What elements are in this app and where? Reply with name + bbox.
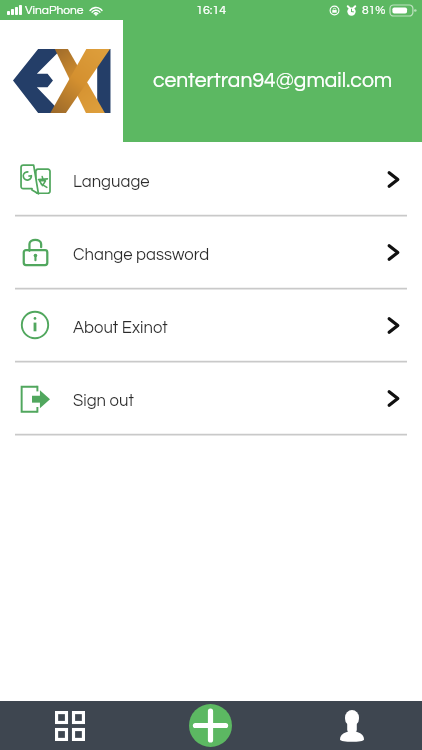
button[interactable]: Dashboard xyxy=(0,701,140,750)
button[interactable]: Add xyxy=(140,701,281,750)
button[interactable]: About Exinot xyxy=(0,288,422,361)
button[interactable]: Change password xyxy=(0,215,422,288)
staticText: Change password xyxy=(73,246,210,263)
staticText: Sign out xyxy=(73,392,134,409)
staticText: About Exinot xyxy=(73,319,168,336)
staticText: 16:14 xyxy=(196,4,227,17)
staticText: VinaPhone xyxy=(25,4,84,16)
button[interactable]: Profile xyxy=(281,701,422,750)
staticText: Language xyxy=(73,173,150,190)
button[interactable]: Language xyxy=(0,142,422,215)
button[interactable]: Sign out xyxy=(0,361,422,434)
staticText: centertran94@gmail.com xyxy=(153,70,393,92)
staticText: 81% xyxy=(362,4,386,16)
